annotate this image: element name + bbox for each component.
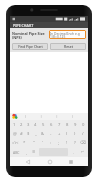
staticText: - bbox=[50, 131, 52, 137]
staticText: # bbox=[20, 131, 23, 137]
button[interactable]: ! bbox=[63, 138, 71, 147]
staticText: 7 bbox=[58, 122, 61, 128]
staticText: . bbox=[73, 150, 74, 155]
staticText: 6 bbox=[50, 122, 53, 128]
staticText: Reset bbox=[64, 44, 73, 49]
button[interactable]: ( bbox=[63, 129, 71, 138]
button[interactable]: $ bbox=[25, 129, 32, 138]
staticText: 2 bbox=[20, 122, 23, 128]
button[interactable]: 6 bbox=[47, 120, 55, 129]
staticText: In Decimal Inch e.g 1/8=0.125 bbox=[50, 31, 80, 38]
button[interactable]: 2 bbox=[18, 120, 25, 129]
button[interactable]: # bbox=[18, 129, 25, 138]
button[interactable]: 1 bbox=[11, 120, 18, 129]
staticText: 3 bbox=[27, 122, 30, 128]
button[interactable]: 4 bbox=[32, 120, 39, 129]
button[interactable]: Home bbox=[45, 157, 54, 166]
staticText: ( bbox=[66, 131, 68, 137]
button[interactable]: =\< bbox=[11, 138, 20, 147]
staticText: =\< bbox=[12, 140, 19, 146]
button[interactable]: ' bbox=[38, 138, 47, 147]
staticText: $ bbox=[27, 131, 30, 137]
staticText: ' bbox=[42, 140, 43, 146]
button[interactable]: 0 bbox=[79, 120, 87, 129]
staticText: _ bbox=[35, 131, 37, 137]
button[interactable]: ABC bbox=[11, 148, 22, 156]
button[interactable]: / bbox=[79, 129, 87, 138]
button[interactable]: + bbox=[55, 129, 63, 138]
button[interactable]: : bbox=[47, 138, 55, 147]
button[interactable]: Reset bbox=[50, 43, 86, 50]
button[interactable]: 5 bbox=[39, 120, 47, 129]
button[interactable]: ; bbox=[55, 138, 63, 147]
staticText: @ bbox=[13, 131, 17, 137]
staticText: 0 bbox=[82, 122, 85, 128]
staticText: 8 bbox=[66, 122, 69, 128]
staticText: PIPE CHART bbox=[13, 23, 34, 28]
button[interactable]: & bbox=[39, 129, 47, 138]
staticText: Find Pipe Chart bbox=[18, 44, 43, 49]
staticText: : bbox=[50, 140, 52, 146]
staticText: 5 bbox=[42, 122, 45, 128]
staticText: ABC bbox=[13, 150, 20, 155]
button[interactable]: Find Pipe Chart bbox=[12, 43, 48, 50]
staticText: ⌫ bbox=[80, 140, 86, 145]
button[interactable]: @ bbox=[11, 129, 18, 138]
button[interactable]: Recents bbox=[66, 157, 75, 166]
button[interactable]: 7 bbox=[55, 120, 63, 129]
button[interactable]: " bbox=[29, 138, 38, 147]
staticText: ) bbox=[74, 131, 76, 137]
staticText: 4 bbox=[34, 122, 37, 128]
button[interactable]: 3 bbox=[25, 120, 32, 129]
button[interactable]: 9 bbox=[71, 120, 79, 129]
staticText: ? bbox=[74, 140, 76, 146]
staticText: + bbox=[58, 131, 61, 137]
staticText: " bbox=[33, 140, 35, 146]
button[interactable]: * bbox=[20, 138, 29, 147]
staticText: 9 bbox=[74, 122, 77, 128]
button[interactable]: 8 bbox=[63, 120, 71, 129]
button[interactable]: ? bbox=[71, 138, 79, 147]
button[interactable]: , bbox=[22, 148, 30, 156]
staticText: * bbox=[23, 140, 26, 146]
button[interactable]: _ bbox=[32, 129, 39, 138]
button[interactable]: In Decimal Inch e.g 1/8=0.125 bbox=[49, 30, 86, 39]
staticText: & bbox=[41, 131, 45, 137]
staticText: , bbox=[26, 150, 27, 155]
staticText: ; bbox=[58, 140, 60, 146]
staticText: ☰ bbox=[32, 150, 36, 154]
staticText: Nominal Pipe Size (NPS) bbox=[12, 31, 47, 41]
staticText: ↵ bbox=[81, 150, 84, 154]
button[interactable]: ) bbox=[71, 129, 79, 138]
button[interactable]: ↵ bbox=[77, 148, 87, 156]
staticText: ! bbox=[66, 140, 68, 146]
button[interactable]: ☰ bbox=[30, 148, 38, 156]
button[interactable]: ⌫ bbox=[79, 138, 87, 147]
staticText: / bbox=[82, 131, 84, 137]
staticText: 1 bbox=[13, 122, 16, 128]
button[interactable]: Back bbox=[23, 157, 32, 166]
